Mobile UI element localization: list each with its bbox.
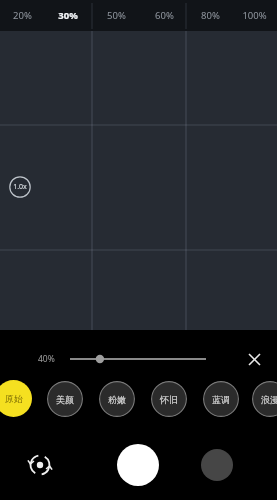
staticText: 60% (155, 9, 174, 22)
staticText: 40% (38, 353, 55, 365)
button[interactable]: 50% (93, 0, 139, 31)
staticText: 浪漫 (261, 394, 277, 405)
button[interactable]: 浪漫 (252, 381, 277, 417)
staticText: 怀旧 (160, 394, 178, 405)
staticText: 原始 (5, 393, 23, 404)
staticText: 100% (242, 9, 267, 22)
button[interactable]: Filter intensity slider (68, 348, 208, 370)
staticText: 30% (58, 9, 78, 22)
button[interactable]: 原始 (0, 380, 32, 417)
button[interactable]: Switch camera (22, 447, 58, 483)
button[interactable]: 粉嫩 (99, 381, 135, 417)
button[interactable]: 蓝调 (203, 381, 239, 417)
staticText: 50% (107, 9, 126, 22)
button[interactable]: Zoom level 1.0x (9, 176, 31, 198)
staticText: 20% (13, 9, 32, 22)
button[interactable]: 60% (141, 0, 187, 31)
button[interactable]: Gallery (201, 449, 233, 481)
staticText: 80% (201, 9, 220, 22)
button[interactable]: Shutter (117, 444, 159, 486)
button[interactable]: 美颜 (47, 381, 83, 417)
button[interactable]: Close filters (243, 348, 265, 370)
button[interactable]: 30% (45, 0, 91, 31)
staticText: 蓝调 (212, 394, 230, 405)
staticText: 粉嫩 (108, 394, 126, 405)
button[interactable]: 80% (187, 0, 233, 31)
staticText: 1.0x (13, 182, 27, 192)
button[interactable]: 怀旧 (151, 381, 187, 417)
button[interactable]: 100% (231, 0, 277, 31)
staticText: 美颜 (56, 394, 74, 405)
button[interactable]: 20% (0, 0, 45, 31)
